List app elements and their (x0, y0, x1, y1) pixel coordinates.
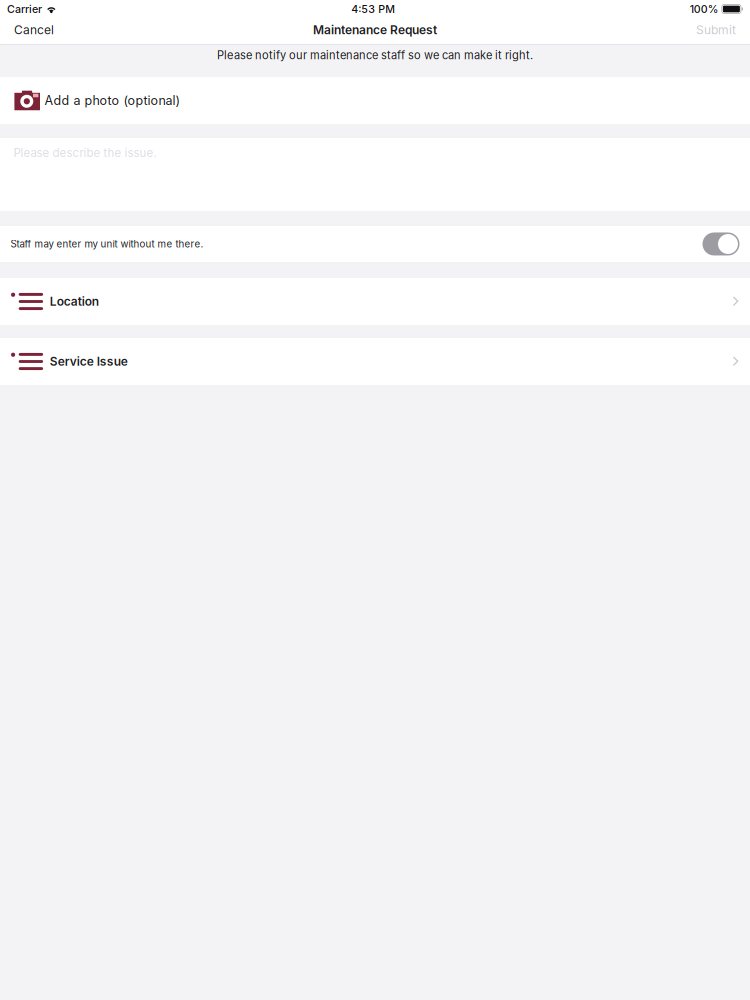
staticText: Carrier (7, 2, 42, 15)
staticText: Location (50, 294, 99, 309)
staticText: Please notify our maintenance staff so w… (217, 49, 533, 62)
button[interactable]: Submit (682, 18, 750, 42)
staticText: Maintenance Request (313, 23, 437, 37)
staticText: Service Issue (50, 354, 128, 369)
staticText: 4:53 PM (351, 2, 395, 15)
staticText: Please describe the issue. (13, 146, 156, 160)
staticText: 100% (690, 2, 719, 15)
button[interactable]: Staff may enter my unit without me there… (0, 226, 750, 262)
button[interactable]: Cancel (0, 18, 68, 42)
button[interactable]: Add a photo (optional) (0, 77, 750, 124)
staticText: Staff may enter my unit without me there… (10, 238, 203, 250)
staticText: Add a photo (optional) (44, 93, 180, 108)
button[interactable]: Location (0, 278, 750, 325)
staticText: Cancel (14, 23, 54, 37)
button[interactable]: Service Issue (0, 338, 750, 385)
staticText: Submit (696, 23, 736, 37)
